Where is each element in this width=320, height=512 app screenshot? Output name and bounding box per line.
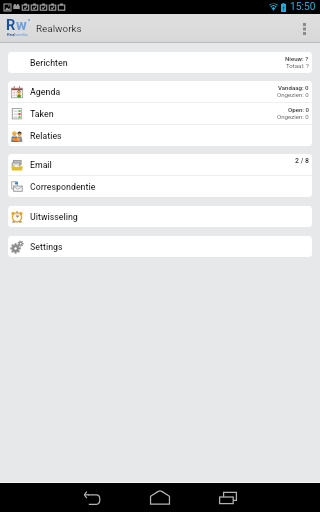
staticText: Agenda bbox=[30, 87, 61, 97]
button[interactable]: Back bbox=[65, 483, 119, 512]
staticText: w bbox=[16, 16, 27, 33]
staticText: Email bbox=[30, 160, 52, 170]
button[interactable]: Taken bbox=[8, 103, 312, 124]
button[interactable]: Agenda bbox=[8, 81, 312, 102]
staticText: Correspondentie bbox=[30, 182, 96, 192]
staticText: Taken bbox=[30, 109, 54, 119]
staticText: Settings bbox=[30, 242, 63, 252]
button[interactable]: Correspondentie bbox=[8, 176, 312, 197]
button[interactable]: Email bbox=[8, 154, 312, 175]
staticText: works bbox=[16, 32, 28, 37]
staticText: Ongezien: 0 bbox=[277, 91, 309, 98]
button[interactable]: Relaties bbox=[8, 125, 312, 146]
staticText: Relaties bbox=[30, 131, 62, 141]
staticText: Uitwisseling bbox=[30, 212, 78, 222]
staticText: Nieuw: ? bbox=[285, 55, 309, 62]
staticText: Totaal: ? bbox=[286, 62, 309, 69]
staticText: R bbox=[6, 16, 16, 33]
staticText: 2 / 8 bbox=[295, 157, 309, 165]
staticText: Ongezien: 0 bbox=[277, 113, 309, 120]
staticText: Berichten bbox=[30, 58, 68, 68]
button[interactable]: Uitwisseling bbox=[8, 206, 312, 227]
staticText: Real bbox=[7, 32, 16, 37]
button[interactable]: Home bbox=[133, 483, 187, 512]
staticText: Open: 0 bbox=[288, 106, 309, 113]
button[interactable]: More options bbox=[289, 14, 320, 43]
staticText: Vandaag: 0 bbox=[278, 84, 309, 91]
button[interactable]: Berichten bbox=[8, 52, 312, 73]
button[interactable]: Recent apps bbox=[201, 483, 255, 512]
staticText: Realworks bbox=[36, 23, 82, 35]
button[interactable]: Settings bbox=[8, 236, 312, 257]
staticText: 15:50 bbox=[290, 1, 316, 13]
